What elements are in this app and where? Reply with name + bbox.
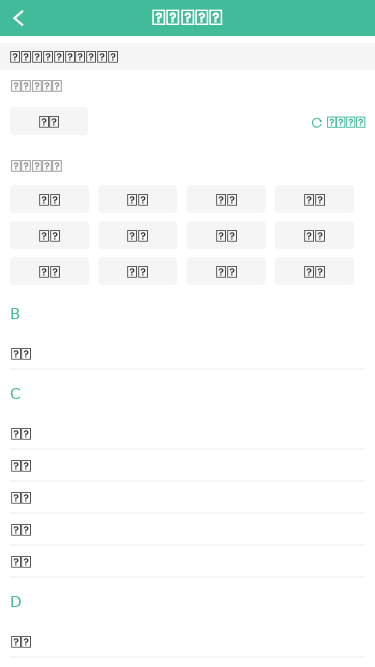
button[interactable]	[10, 107, 88, 135]
button[interactable]	[98, 221, 177, 249]
button[interactable]	[98, 257, 177, 285]
button[interactable]	[10, 185, 89, 213]
button[interactable]	[98, 185, 177, 213]
button[interactable]	[0, 491, 375, 523]
button[interactable]	[10, 257, 89, 285]
button[interactable]	[10, 221, 89, 249]
button[interactable]	[0, 523, 375, 555]
button[interactable]	[0, 635, 375, 667]
button[interactable]	[0, 459, 375, 491]
button[interactable]	[275, 221, 354, 249]
button[interactable]	[187, 257, 266, 285]
button[interactable]	[0, 555, 375, 587]
button[interactable]	[0, 347, 375, 379]
button[interactable]	[275, 185, 354, 213]
button[interactable]	[187, 185, 266, 213]
button[interactable]: Back	[0, 0, 36, 36]
button[interactable]	[310, 112, 366, 134]
button[interactable]	[275, 257, 354, 285]
button[interactable]	[0, 427, 375, 459]
button[interactable]	[187, 221, 266, 249]
